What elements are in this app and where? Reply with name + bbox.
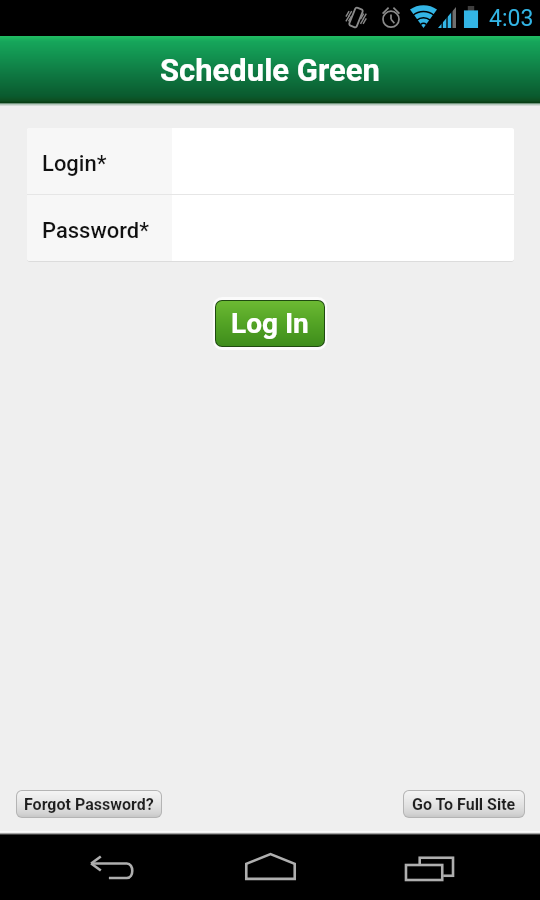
- staticText: Go To Full Site: [412, 795, 516, 814]
- button[interactable]: Log In: [216, 301, 324, 346]
- staticText: Forgot Password?: [24, 795, 154, 814]
- button[interactable]: Back: [67, 835, 157, 900]
- staticText: Login*: [42, 151, 107, 177]
- button[interactable]: Password*: [27, 195, 514, 261]
- staticText: Password*: [42, 218, 149, 244]
- button[interactable]: Home: [225, 835, 315, 900]
- staticText: 4:03: [489, 5, 534, 32]
- button[interactable]: Login*: [27, 128, 514, 194]
- staticText: Schedule Green: [160, 52, 380, 88]
- button[interactable]: Forgot Password?: [17, 791, 161, 817]
- button[interactable]: Recent apps: [385, 835, 475, 900]
- button[interactable]: Go To Full Site: [404, 791, 524, 817]
- staticText: Log In: [231, 307, 309, 340]
